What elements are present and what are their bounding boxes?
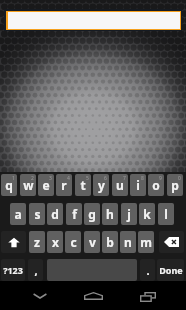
button[interactable]: h: [102, 203, 118, 225]
staticText: 6: [104, 175, 107, 182]
staticText: 7: [123, 175, 126, 182]
staticText: x: [52, 234, 59, 250]
button[interactable]: a: [10, 203, 26, 225]
staticText: 9: [159, 175, 162, 182]
staticText: f: [72, 206, 77, 222]
button[interactable]: Recent apps: [119, 286, 176, 308]
staticText: Done: [159, 264, 183, 276]
button[interactable]: b: [102, 231, 118, 253]
staticText: b: [106, 234, 114, 250]
button[interactable]: Back: [12, 285, 68, 307]
button[interactable]: Backspace: [159, 231, 184, 253]
staticText: 5: [86, 175, 89, 182]
staticText: i: [136, 177, 140, 193]
button[interactable]: n: [120, 231, 136, 253]
button[interactable]: Shift: [1, 231, 26, 253]
staticText: d: [51, 206, 59, 222]
button[interactable]: q: [1, 174, 17, 196]
staticText: 2: [31, 175, 34, 182]
staticText: 3: [49, 175, 52, 182]
staticText: h: [106, 206, 114, 222]
staticText: k: [143, 206, 151, 222]
staticText: g: [88, 206, 96, 222]
button[interactable]: v: [84, 231, 100, 253]
staticText: y: [98, 177, 105, 193]
staticText: t: [80, 177, 86, 193]
staticText: l: [164, 206, 168, 222]
button[interactable]: z: [29, 231, 45, 253]
staticText: e: [42, 177, 50, 193]
button[interactable]: g: [84, 203, 100, 225]
button[interactable]: x: [47, 231, 63, 253]
button[interactable]: ,: [28, 259, 43, 281]
staticText: 1: [12, 175, 15, 182]
button[interactable]: [4, 9, 182, 31]
staticText: 8: [141, 175, 144, 182]
staticText: 4: [67, 175, 70, 182]
staticText: j: [127, 206, 131, 222]
staticText: n: [124, 234, 132, 250]
staticText: r: [61, 177, 67, 193]
button[interactable]: s: [29, 203, 45, 225]
button[interactable]: .: [140, 259, 155, 281]
button[interactable]: Home: [65, 285, 121, 307]
button[interactable]: j: [121, 203, 137, 225]
staticText: .: [146, 263, 150, 278]
button[interactable]: d: [47, 203, 63, 225]
staticText: ?123: [3, 264, 23, 276]
button[interactable]: y: [93, 174, 109, 196]
button[interactable]: ?123: [1, 259, 25, 281]
staticText: s: [34, 206, 41, 222]
button[interactable]: l: [158, 203, 174, 225]
button[interactable]: k: [139, 203, 155, 225]
staticText: u: [116, 177, 124, 193]
button[interactable]: r: [56, 174, 72, 196]
button[interactable]: t: [75, 174, 91, 196]
staticText: a: [14, 206, 22, 222]
button[interactable]: i: [130, 174, 146, 196]
button[interactable]: f: [66, 203, 82, 225]
button[interactable]: e: [38, 174, 54, 196]
staticText: 0: [178, 175, 181, 182]
staticText: z: [34, 234, 40, 250]
button[interactable]: c: [65, 231, 81, 253]
staticText: o: [152, 177, 160, 193]
staticText: ,: [34, 263, 38, 278]
button[interactable]: u: [112, 174, 128, 196]
button[interactable]: Done: [157, 259, 184, 281]
button[interactable]: o: [148, 174, 164, 196]
staticText: p: [171, 177, 179, 193]
staticText: v: [89, 234, 96, 250]
staticText: q: [5, 177, 13, 193]
staticText: m: [140, 234, 152, 250]
button[interactable]: p: [167, 174, 183, 196]
staticText: w: [23, 177, 34, 193]
staticText: c: [70, 234, 77, 250]
button[interactable]: m: [138, 231, 154, 253]
button[interactable]: w: [20, 174, 36, 196]
